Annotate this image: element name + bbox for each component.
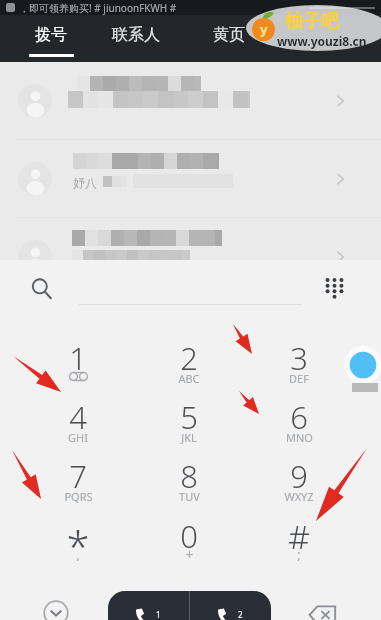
- staticText: +: [185, 545, 194, 561]
- staticText: y: [260, 20, 268, 38]
- staticText: #: [288, 515, 310, 549]
- staticText: ;: [297, 545, 301, 561]
- button[interactable]: 2: [141, 337, 237, 396]
- button[interactable]: 9: [251, 455, 347, 514]
- button[interactable]: 7: [30, 455, 126, 514]
- button[interactable]: [0, 218, 381, 296]
- staticText: 妤八: [73, 175, 97, 190]
- staticText: 3: [290, 337, 308, 371]
- button[interactable]: 3: [251, 337, 347, 396]
- button[interactable]: Keypad: [315, 269, 353, 307]
- staticText: 6: [290, 396, 308, 430]
- staticText: 拨号: [35, 25, 67, 45]
- button[interactable]: 妤八: [0, 140, 381, 218]
- staticText: 0: [180, 515, 198, 549]
- button[interactable]: 4: [30, 396, 126, 455]
- button[interactable]: Call with SIM 1: [108, 591, 189, 620]
- button[interactable]: Search: [23, 270, 61, 308]
- staticText: 4: [69, 396, 87, 430]
- button[interactable]: Expand options: [34, 591, 78, 620]
- staticText: 7: [69, 455, 87, 489]
- button[interactable]: *: [30, 515, 126, 574]
- staticText: 1: [156, 609, 161, 620]
- staticText: 1: [69, 337, 87, 371]
- staticText: WXYZ: [284, 489, 314, 504]
- button[interactable]: 8: [141, 455, 237, 514]
- staticText: MNO: [286, 430, 313, 445]
- button[interactable]: [0, 62, 381, 140]
- staticText: www.youzi8.cn: [277, 33, 367, 49]
- button[interactable]: #: [251, 515, 347, 574]
- staticText: 黄页: [213, 25, 245, 45]
- staticText: ,: [76, 545, 80, 561]
- button[interactable]: 拨号: [9, 15, 93, 62]
- button[interactable]: Floating assistant: [344, 346, 381, 384]
- staticText: 9: [290, 455, 308, 489]
- staticText: PQRS: [64, 489, 93, 504]
- staticText: *: [66, 517, 90, 551]
- button[interactable]: 1: [30, 337, 126, 396]
- staticText: GHI: [68, 430, 88, 445]
- button[interactable]: 5: [141, 396, 237, 455]
- staticText: 8: [180, 455, 198, 489]
- staticText: TUV: [179, 489, 200, 504]
- button[interactable]: 0: [141, 515, 237, 574]
- button[interactable]: 6: [251, 396, 347, 455]
- button[interactable]: 黄页: [187, 15, 271, 62]
- button[interactable]: Call with SIM 2: [190, 591, 271, 620]
- staticText: ABC: [178, 371, 200, 386]
- button[interactable]: Backspace: [300, 593, 344, 620]
- staticText: JKL: [181, 430, 197, 445]
- staticText: 2: [238, 609, 243, 620]
- staticText: DEF: [289, 371, 309, 386]
- staticText: 5: [180, 396, 198, 430]
- staticText: ，即可领养购买! # jiunoonFKWH #: [19, 1, 179, 15]
- staticText: 2: [180, 337, 198, 371]
- staticText: 联系人: [112, 25, 160, 45]
- staticText: 柚子吧: [285, 10, 339, 33]
- button[interactable]: 联系人: [94, 15, 178, 62]
